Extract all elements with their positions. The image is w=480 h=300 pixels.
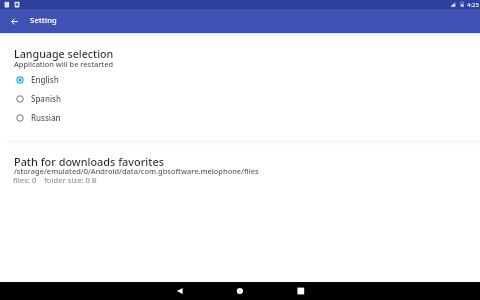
staticText: Russian — [31, 112, 61, 123]
staticText: English — [31, 74, 59, 85]
button[interactable]: Back — [150, 282, 210, 300]
staticText: Path for downloads favorites — [14, 154, 164, 169]
button[interactable]: Recent apps — [270, 282, 330, 300]
staticText: files: 0 folder size: 0 B — [13, 175, 97, 185]
staticText: /storage/emulated/0/Android/data/com.gbs… — [14, 166, 259, 176]
staticText: Application will be restarted — [14, 59, 114, 69]
button[interactable]: Russian — [0, 108, 480, 127]
button[interactable]: Home — [210, 282, 270, 300]
staticText: Setting — [30, 15, 58, 25]
button[interactable]: English — [0, 70, 480, 89]
button[interactable]: Spanish — [0, 89, 480, 108]
staticText: Language selection — [14, 47, 114, 62]
button[interactable]: Back — [0, 9, 26, 33]
staticText: Spanish — [31, 93, 62, 104]
staticText: 4:25 — [467, 1, 479, 9]
